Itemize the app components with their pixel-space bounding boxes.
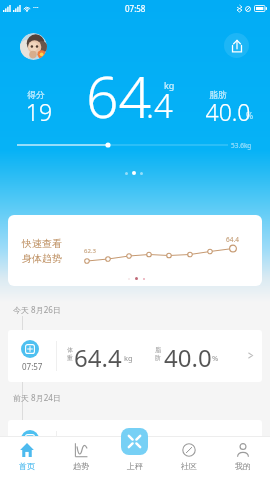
button[interactable]: 07:57 bbox=[8, 330, 262, 382]
staticText: 得分 bbox=[14, 90, 58, 101]
button[interactable]: 趋势 bbox=[54, 436, 108, 480]
staticText: 07:58 bbox=[125, 3, 146, 14]
button[interactable]: 我的 bbox=[216, 436, 270, 480]
staticText: 脂 bbox=[155, 346, 161, 354]
button[interactable]: 上秤 bbox=[108, 436, 162, 480]
staticText: 首页 bbox=[19, 461, 35, 471]
button[interactable]: 07:57 bbox=[8, 420, 262, 472]
staticText: kg bbox=[164, 79, 175, 91]
staticText: 07:57 bbox=[22, 361, 43, 372]
staticText: 19 bbox=[17, 96, 61, 127]
button[interactable]: Share bbox=[224, 33, 249, 58]
staticText: 53.6kg bbox=[231, 141, 252, 150]
staticText: ··· bbox=[33, 3, 39, 13]
staticText: 64.4 bbox=[74, 431, 122, 464]
staticText: 上秤 bbox=[127, 461, 143, 471]
staticText: % bbox=[246, 110, 254, 122]
button[interactable]: Profile bbox=[20, 33, 47, 60]
staticText: 40.0 bbox=[200, 96, 256, 127]
staticText: % bbox=[212, 353, 219, 363]
staticText: kg bbox=[124, 443, 133, 453]
staticText: 社区 bbox=[181, 461, 197, 471]
staticText: 脂肪 bbox=[194, 90, 242, 101]
staticText: 07:57 bbox=[22, 451, 43, 462]
staticText: 脂 bbox=[155, 436, 161, 444]
staticText: 今天 8月26日 bbox=[13, 304, 61, 315]
staticText: 肪 bbox=[155, 354, 161, 362]
staticText: 我的 bbox=[235, 461, 251, 471]
staticText: 趋势 bbox=[73, 461, 89, 471]
button[interactable]: Weigh in bbox=[121, 428, 148, 455]
button[interactable]: 快速查看 bbox=[8, 215, 262, 286]
staticText: 40.0 bbox=[164, 341, 212, 374]
staticText: 身体趋势 bbox=[22, 252, 62, 265]
button[interactable]: 首页 bbox=[0, 436, 54, 480]
staticText: kg bbox=[124, 353, 133, 363]
staticText: 重 bbox=[67, 354, 73, 362]
staticText: 62.3 bbox=[84, 247, 96, 255]
staticText: 64.4 bbox=[226, 235, 239, 244]
staticText: 快速查看 bbox=[22, 237, 62, 250]
staticText: 体 bbox=[67, 436, 73, 444]
staticText: 64.4 bbox=[74, 341, 122, 374]
staticText: 40.0 bbox=[164, 431, 212, 464]
button[interactable]: 社区 bbox=[162, 436, 216, 480]
staticText: 前天 8月24日 bbox=[13, 392, 61, 403]
staticText: .4 bbox=[146, 83, 173, 128]
staticText: 64 bbox=[86, 57, 152, 135]
staticText: 体 bbox=[67, 346, 73, 354]
